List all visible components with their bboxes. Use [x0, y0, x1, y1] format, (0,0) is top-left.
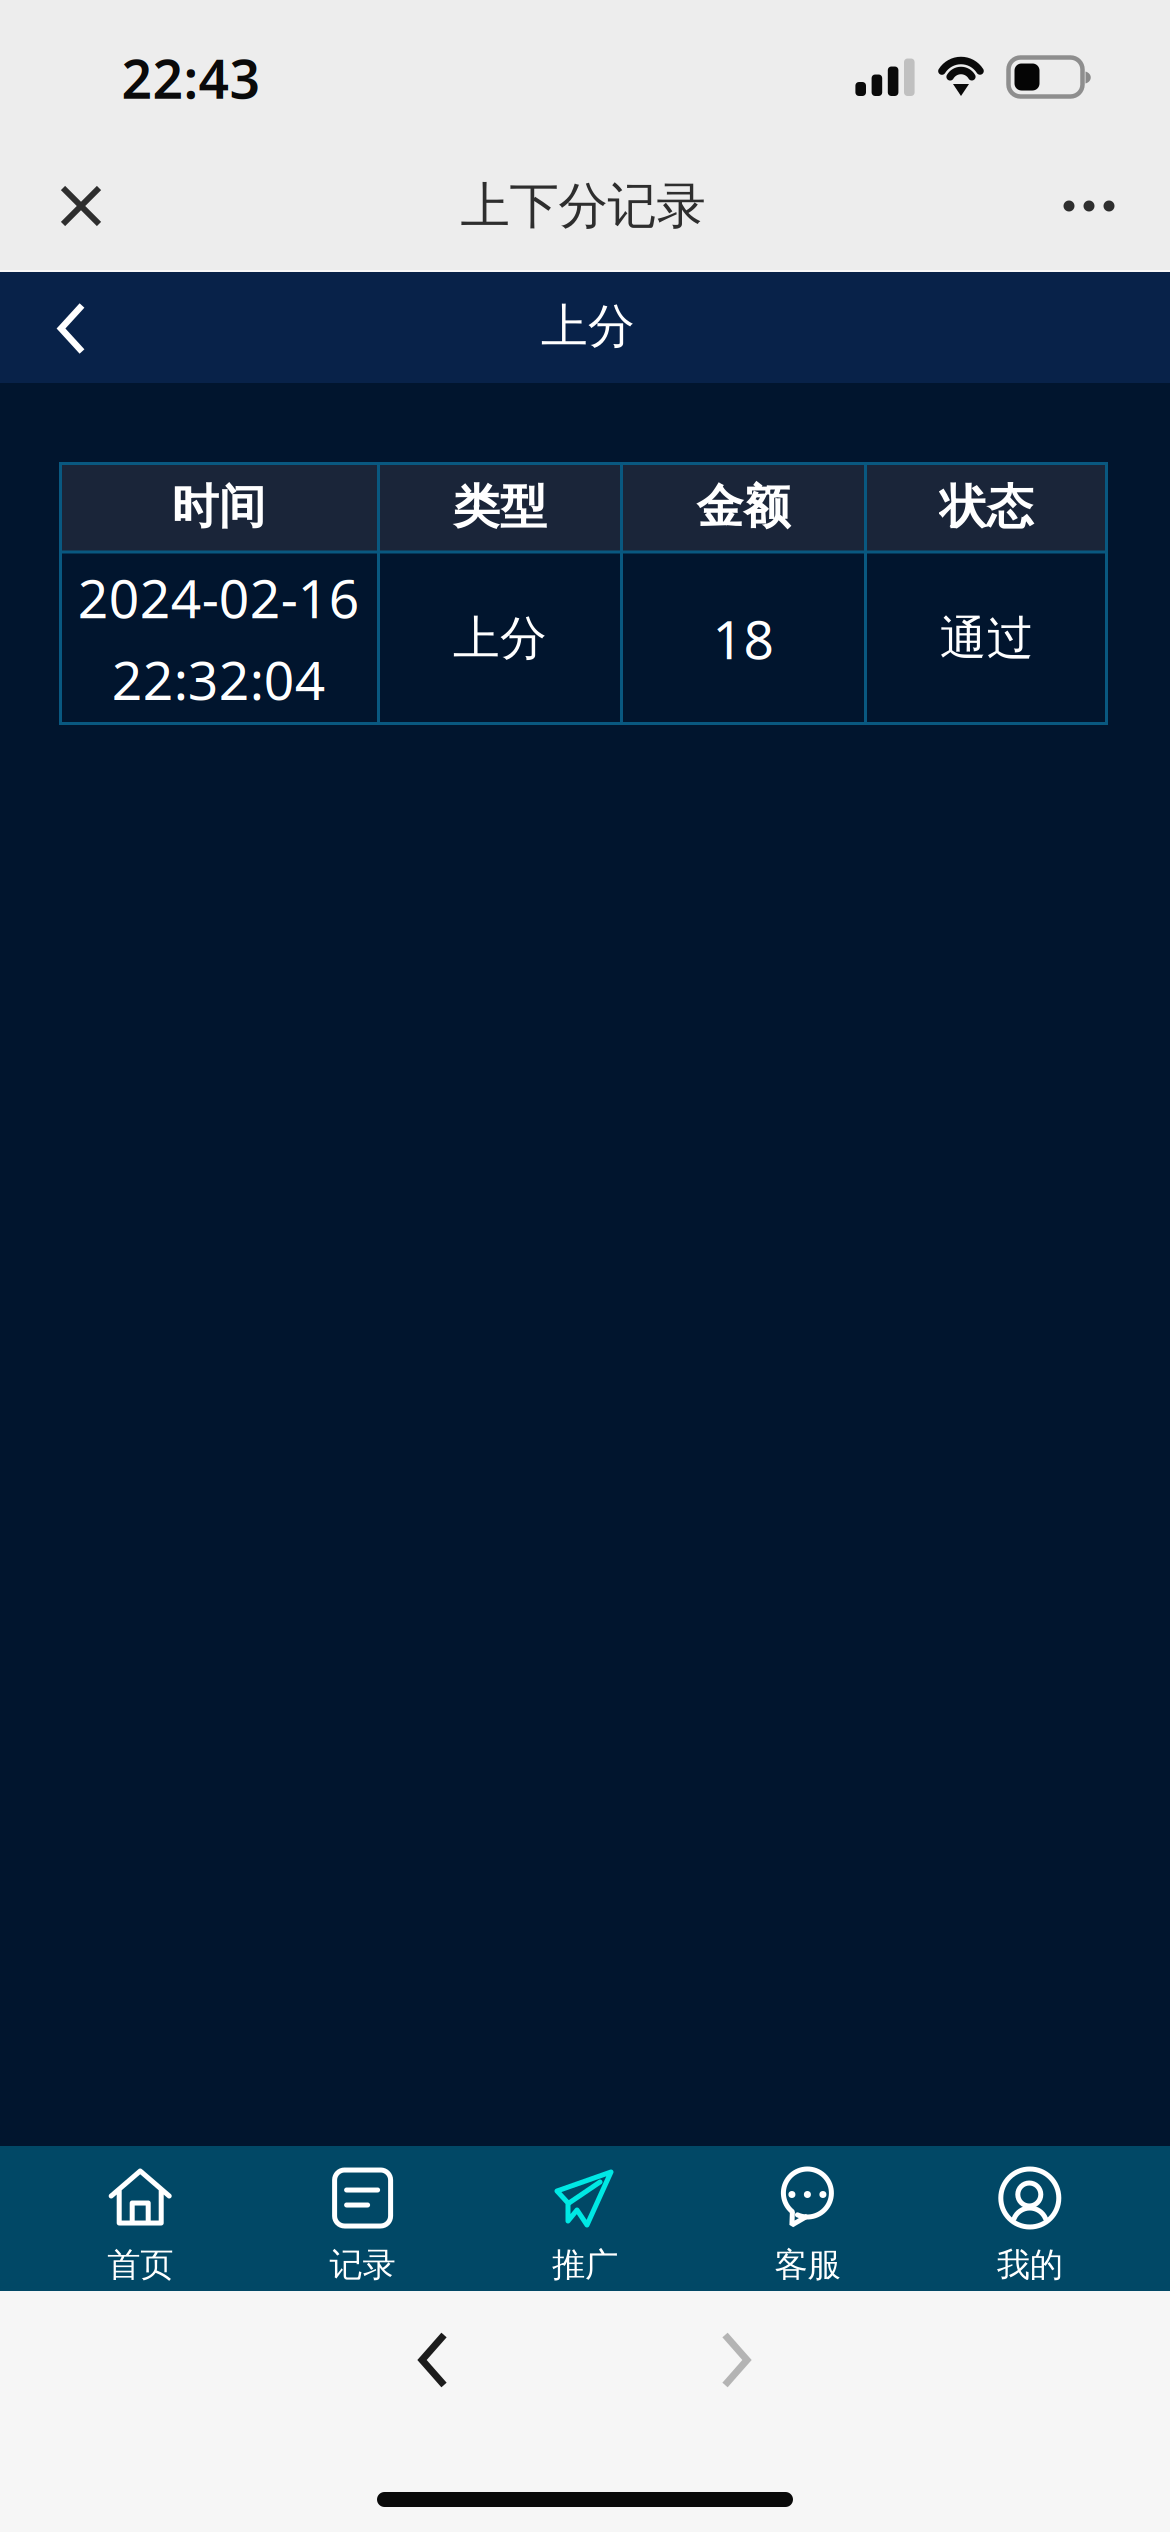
staticText: 我的 — [997, 2244, 1063, 2285]
button[interactable]: 客服 — [696, 2146, 919, 2291]
staticText: 类型 — [453, 478, 547, 536]
button[interactable]: More — [1047, 175, 1131, 237]
button[interactable]: Back — [53, 298, 91, 358]
button[interactable]: 推广 — [474, 2146, 696, 2291]
button[interactable]: 我的 — [919, 2146, 1141, 2291]
staticText: 客服 — [774, 2244, 840, 2285]
button[interactable]: 首页 — [29, 2146, 251, 2291]
button[interactable]: Forward — [720, 2329, 752, 2391]
staticText: 22:32:04 — [112, 644, 326, 715]
staticText: 记录 — [330, 2244, 396, 2285]
staticText: 上分 — [541, 298, 635, 355]
staticText: 上下分记录 — [460, 176, 705, 236]
staticText: 上分 — [453, 610, 547, 667]
button[interactable]: Close — [50, 175, 112, 237]
staticText: 金额 — [696, 478, 790, 536]
staticText: 首页 — [107, 2244, 173, 2285]
button[interactable]: 记录 — [251, 2146, 474, 2291]
staticText: 2024-02-16 — [78, 562, 360, 633]
staticText: 通过 — [940, 610, 1034, 667]
staticText: 状态 — [940, 478, 1034, 536]
button[interactable]: Back — [417, 2329, 449, 2391]
staticText: 22:43 — [121, 43, 260, 113]
staticText: 推广 — [552, 2244, 618, 2285]
staticText: 时间 — [172, 478, 266, 536]
staticText: 18 — [712, 603, 774, 674]
